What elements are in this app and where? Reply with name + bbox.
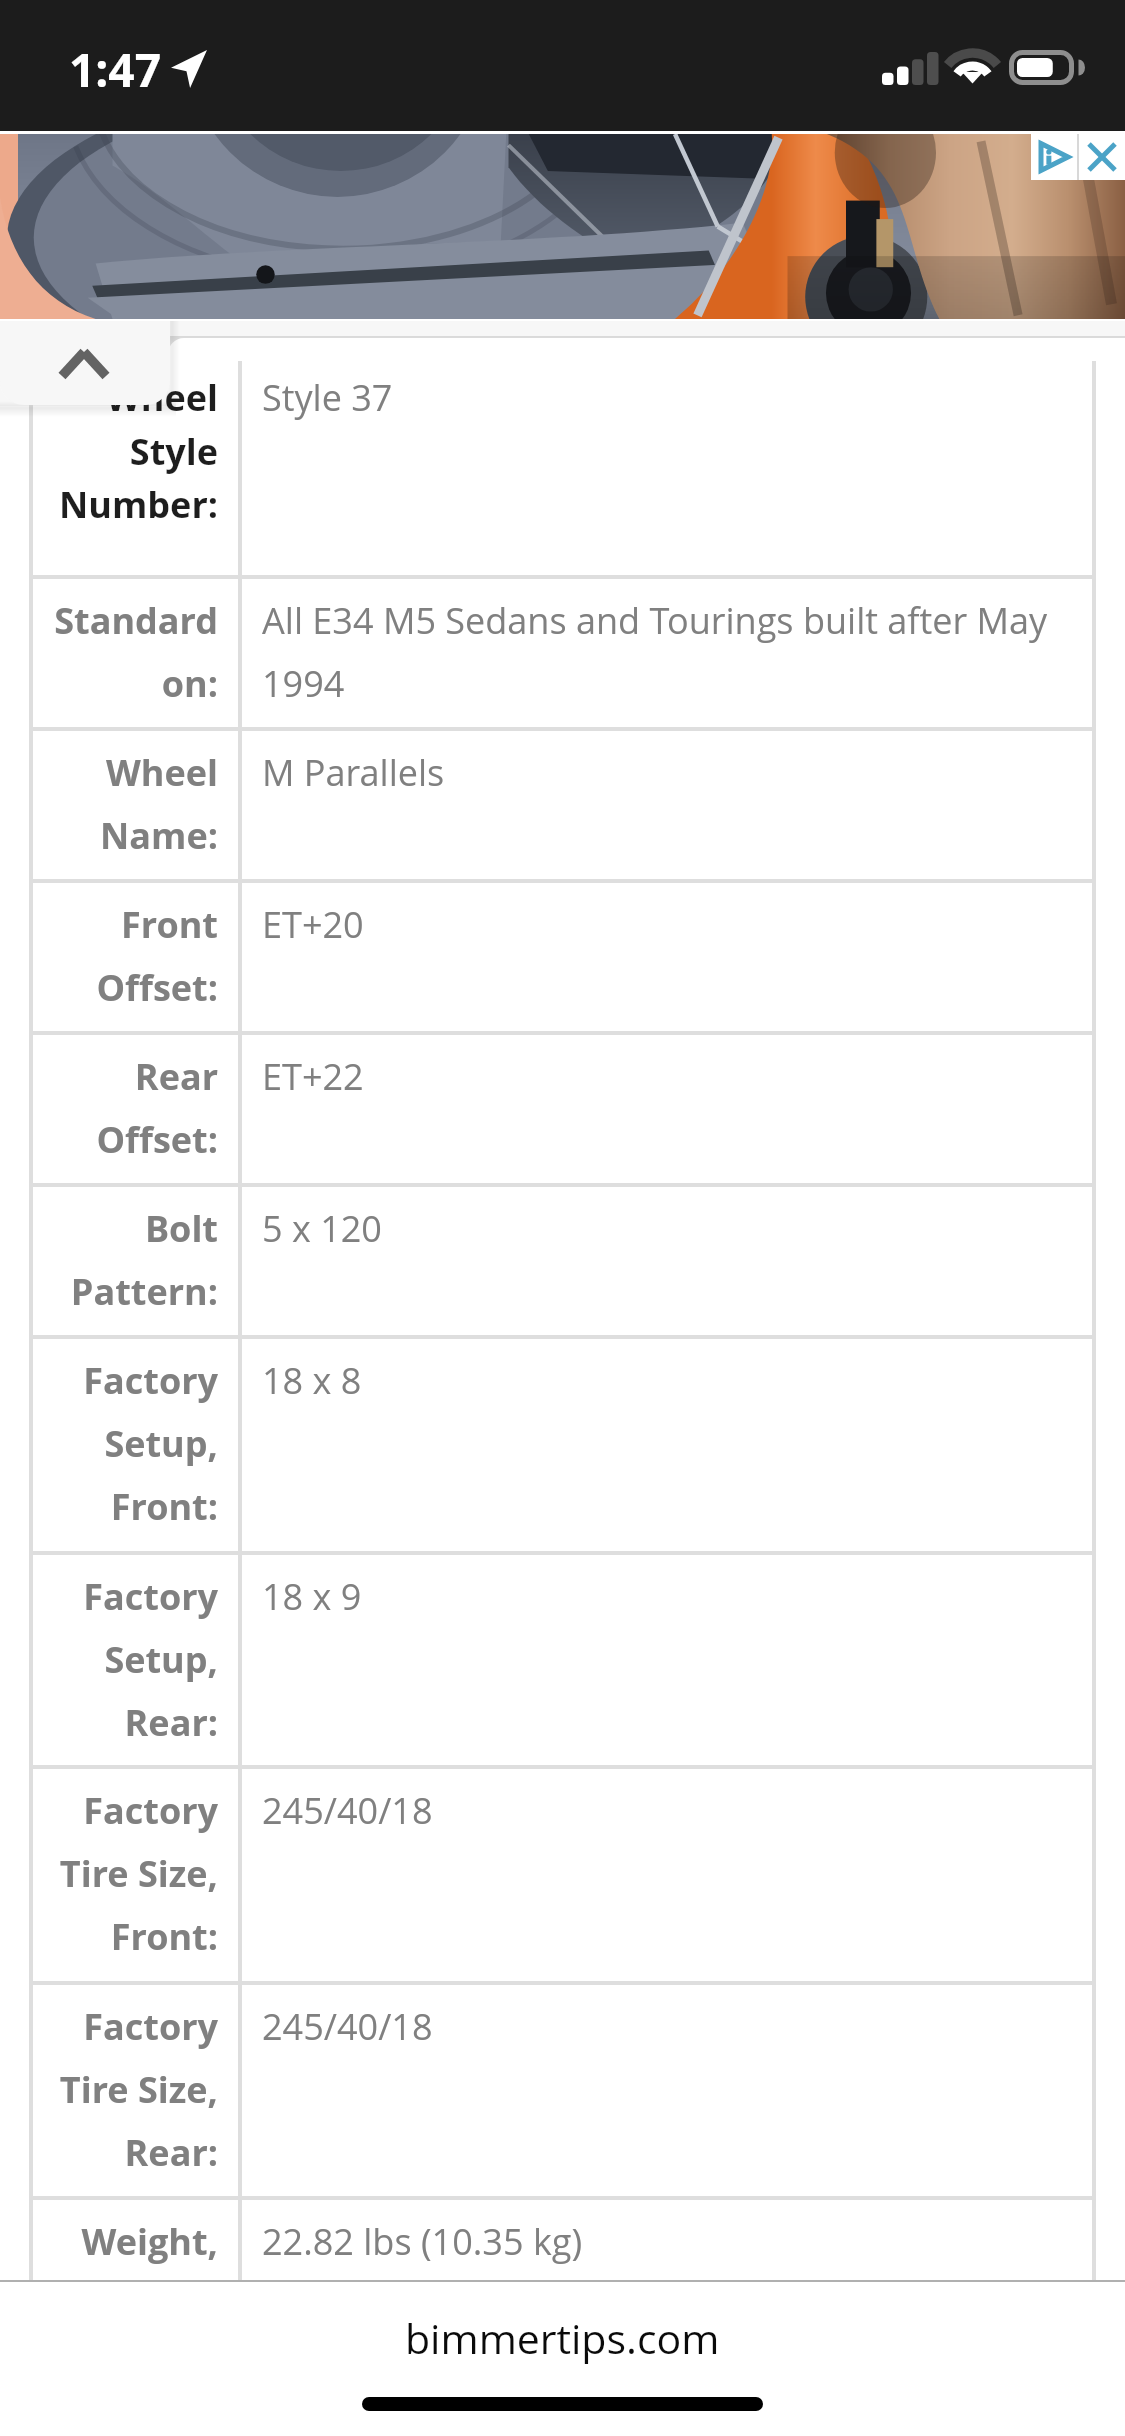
staticText: Weight, bbox=[0, 2217, 218, 2280]
staticText: Offset: bbox=[0, 1115, 218, 1178]
button[interactable]: Ad choices bbox=[1031, 134, 1077, 180]
staticText: All E34 M5 Sedans and Tourings built aft… bbox=[262, 596, 1094, 659]
staticText: 18 x 8 bbox=[262, 1356, 1094, 1419]
staticText: Style 37 bbox=[262, 373, 1094, 427]
staticText: Wheel bbox=[0, 748, 218, 811]
staticText: 18 x 9 bbox=[262, 1572, 1094, 1635]
staticText: 22.82 lbs (10.35 kg) bbox=[262, 2217, 1094, 2280]
staticText: Factory bbox=[0, 2002, 218, 2065]
staticText: Rear: bbox=[0, 1698, 218, 1761]
staticText: Style bbox=[0, 427, 218, 481]
staticText: 245/40/18 bbox=[262, 1786, 1094, 1849]
staticText: Name: bbox=[0, 811, 218, 874]
staticText: 245/40/18 bbox=[262, 2002, 1094, 2065]
staticText: bimmertips.com bbox=[405, 2310, 720, 2366]
staticText: Bolt bbox=[0, 1204, 218, 1267]
staticText: Setup, bbox=[0, 1635, 218, 1698]
staticText: Factory bbox=[0, 1572, 218, 1635]
staticText: on: bbox=[0, 659, 218, 722]
staticText: Number: bbox=[0, 480, 218, 534]
staticText: Front bbox=[0, 900, 218, 963]
staticText: ET+20 bbox=[262, 900, 1094, 963]
staticText: Factory bbox=[0, 1786, 218, 1849]
button[interactable]: Collapse bbox=[0, 321, 170, 405]
staticText: Setup, bbox=[0, 1419, 218, 1482]
button[interactable]: Close ad bbox=[1079, 134, 1125, 180]
staticText: Wheel bbox=[0, 373, 218, 427]
staticText: Rear bbox=[0, 1052, 218, 1115]
staticText: M Parallels bbox=[262, 748, 1094, 811]
staticText: Rear: bbox=[0, 2128, 218, 2191]
staticText: Tire Size, bbox=[0, 1849, 218, 1912]
staticText: 1994 bbox=[262, 659, 1094, 722]
staticText: Standard bbox=[0, 596, 218, 659]
staticText: Front: bbox=[0, 1912, 218, 1975]
staticText: ET+22 bbox=[262, 1052, 1094, 1115]
staticText: 1:47 bbox=[69, 38, 161, 101]
staticText: Pattern: bbox=[0, 1267, 218, 1330]
staticText: Factory bbox=[0, 1356, 218, 1419]
staticText: Front: bbox=[0, 1482, 218, 1545]
staticText: Tire Size, bbox=[0, 2065, 218, 2128]
staticText: 5 x 120 bbox=[262, 1204, 1094, 1267]
staticText: Offset: bbox=[0, 963, 218, 1026]
